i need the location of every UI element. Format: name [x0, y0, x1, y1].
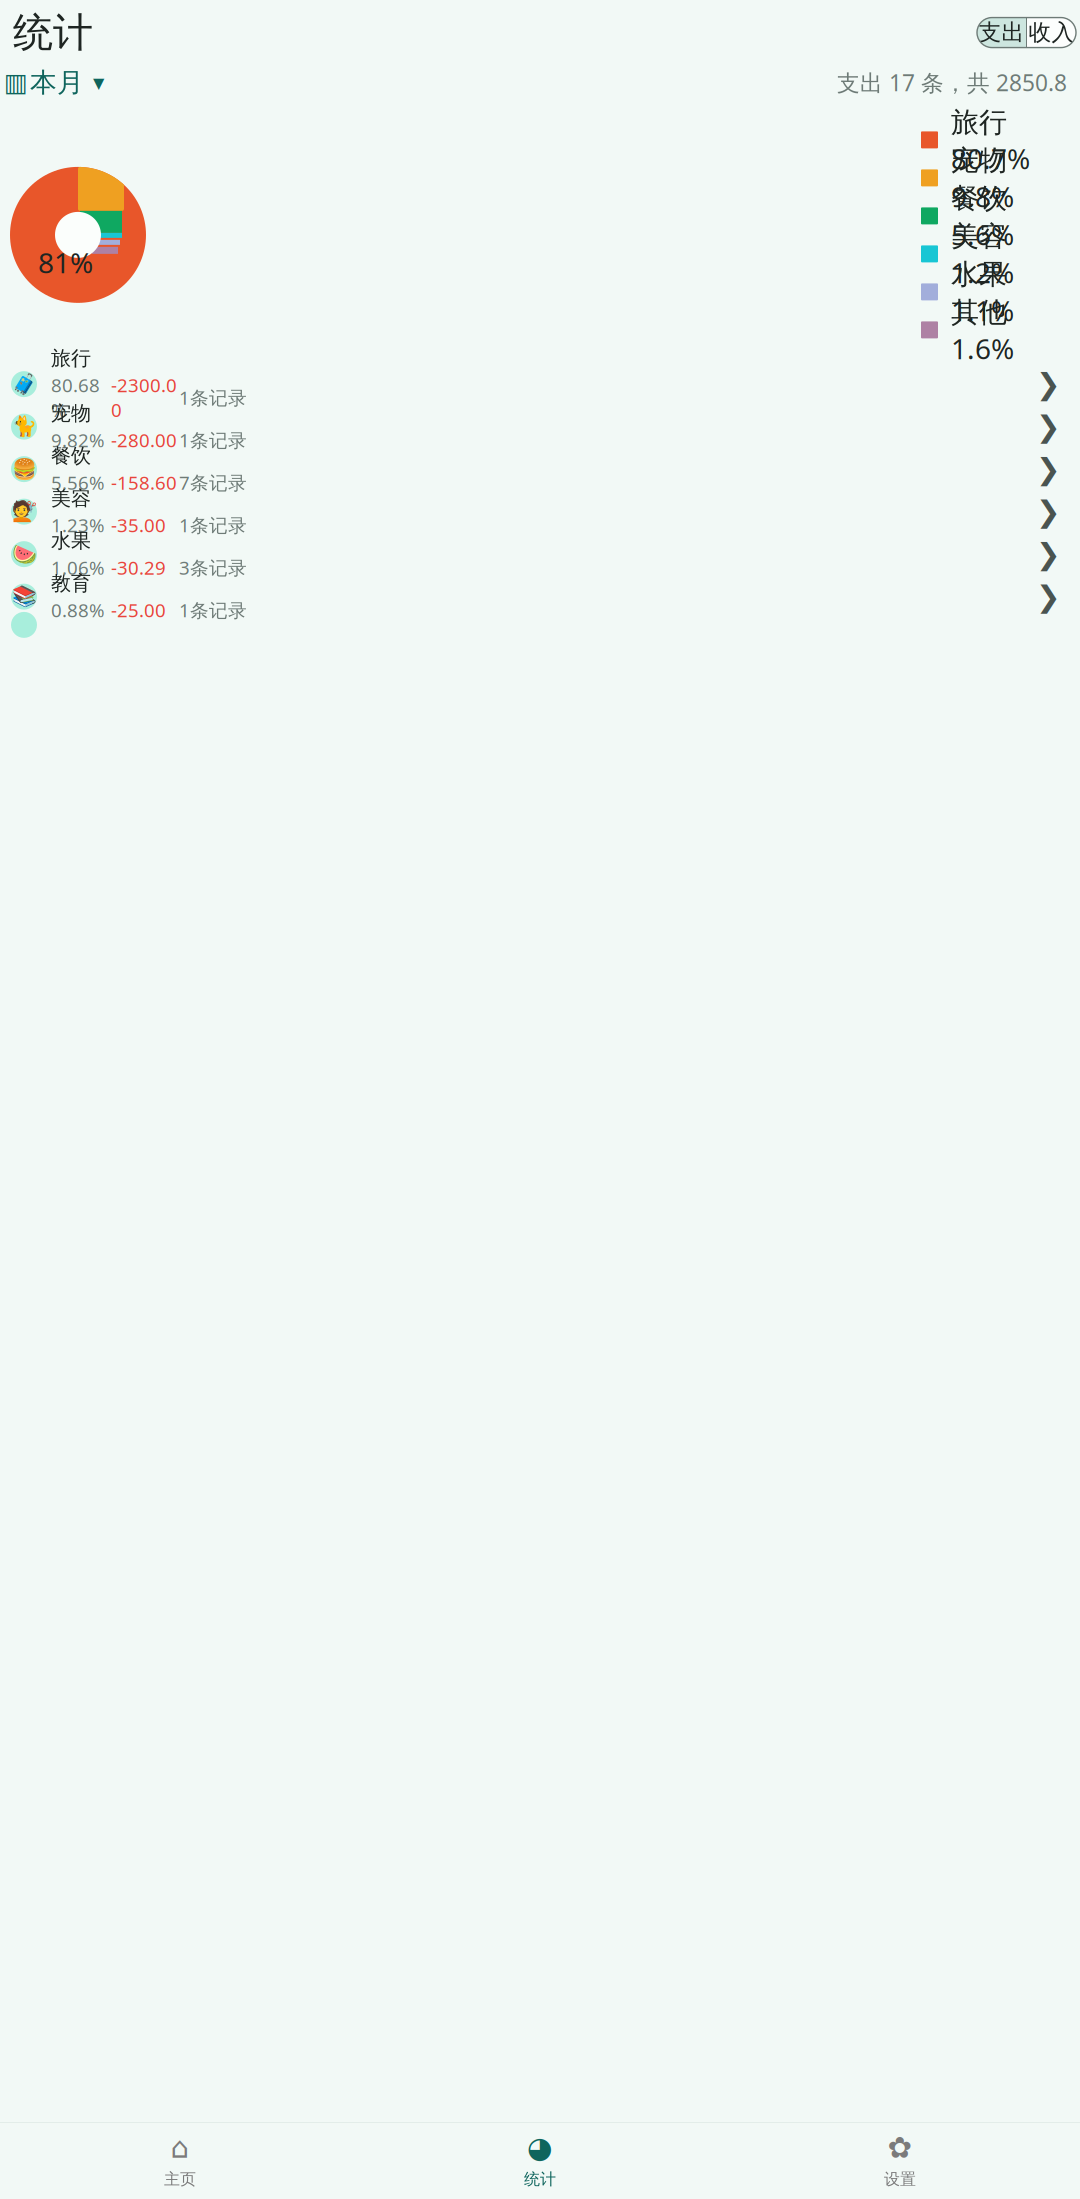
staticText: 水果 — [51, 528, 91, 553]
staticText: 📚 — [11, 585, 36, 608]
staticText: 宠物 — [51, 401, 91, 426]
button[interactable]: ▥ — [0, 66, 104, 99]
staticText: 教育 — [51, 571, 91, 596]
staticText: 5.56% — [51, 470, 105, 495]
staticText: 1条记录 — [179, 512, 247, 537]
staticText: 80.68% — [51, 373, 100, 422]
button[interactable]: ◕ — [360, 2123, 720, 2199]
staticText: 0.88% — [51, 597, 105, 622]
staticText: ❯ — [1036, 367, 1061, 401]
staticText: ▾ — [93, 70, 104, 95]
button[interactable]: 🐈 — [0, 405, 1080, 448]
button[interactable]: 📚 — [0, 575, 1080, 618]
staticText: 餐饮 — [51, 443, 91, 468]
staticText: 3条记录 — [179, 555, 247, 580]
staticText: ✿ — [887, 2131, 912, 2164]
staticText: 统计 — [13, 8, 93, 57]
staticText: 7条记录 — [179, 470, 247, 495]
staticText: -30.29 — [111, 555, 166, 580]
staticText: 支出 — [978, 19, 1024, 46]
staticText: 统计 — [524, 2169, 556, 2189]
staticText: 餐饮 5.6% — [951, 179, 1014, 253]
staticText: 🧳 — [11, 373, 36, 396]
staticText: ❯ — [1036, 452, 1061, 486]
staticText: 其他 1.6% — [951, 293, 1014, 367]
staticText: 收入 — [1028, 19, 1074, 46]
staticText: 🐈 — [11, 415, 36, 438]
staticText: ⌂ — [170, 2131, 189, 2164]
staticText: 本月 — [30, 66, 84, 99]
staticText: -280.00 — [111, 427, 177, 452]
staticText: 1条记录 — [179, 385, 247, 410]
staticText: 设置 — [884, 2169, 916, 2189]
staticText: -35.00 — [111, 512, 166, 537]
button[interactable]: ✿ — [720, 2123, 1080, 2199]
button[interactable]: 🧳 — [0, 363, 1080, 405]
staticText: 💇 — [11, 500, 36, 523]
staticText: ❯ — [1036, 410, 1061, 443]
staticText: 🍔 — [11, 458, 36, 481]
staticText: 旅行 — [51, 346, 91, 371]
staticText: 1条记录 — [179, 427, 247, 452]
staticText: -158.60 — [111, 470, 177, 495]
button[interactable]: 收入 — [1027, 18, 1076, 48]
staticText: 旅行 80.7% — [951, 103, 1030, 177]
button[interactable]: 🍉 — [0, 533, 1080, 575]
button[interactable]: ⌂ — [0, 2123, 360, 2199]
staticText: 1.06% — [51, 555, 105, 580]
staticText: ▥ — [4, 68, 28, 97]
staticText: 9.82% — [51, 427, 105, 452]
staticText: -25.00 — [111, 597, 166, 622]
staticText: ❯ — [1036, 495, 1061, 528]
button[interactable]: 💇 — [0, 490, 1080, 533]
staticText: 🍉 — [11, 543, 36, 566]
staticText: -2300.00 — [111, 373, 177, 422]
staticText: ❯ — [1036, 537, 1061, 571]
staticText: 宠物 9.8% — [951, 141, 1014, 215]
staticText: 1.23% — [51, 512, 105, 537]
staticText: 美容 1.2% — [951, 217, 1014, 291]
staticText: 水果 1.1% — [951, 255, 1014, 329]
button[interactable]: 支出 — [977, 18, 1026, 48]
staticText: 81% — [38, 244, 93, 281]
staticText: 美容 — [51, 486, 91, 511]
staticText: ❯ — [1036, 580, 1061, 613]
staticText: 1条记录 — [179, 597, 247, 622]
staticText: 支出 17 条，共 2850.8 — [837, 67, 1067, 98]
staticText: ◕ — [527, 2131, 553, 2164]
staticText: 主页 — [164, 2169, 196, 2189]
button[interactable]: 🍔 — [0, 448, 1080, 490]
